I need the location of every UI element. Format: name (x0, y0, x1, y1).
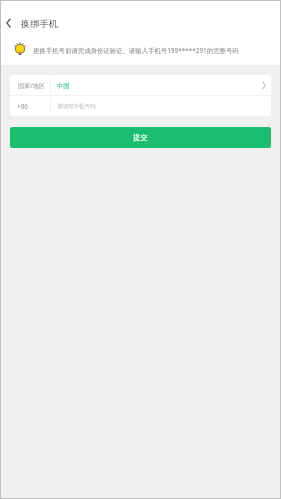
button[interactable]: 提交 (10, 127, 271, 148)
staticText: 换绑手机 (21, 18, 58, 30)
staticText: 更换手机号前请完成身份证验证。请输入手机号199*****291的完整号码 (33, 46, 239, 55)
button[interactable]: Back (1, 15, 16, 30)
staticText: 请填写手机号码 (57, 103, 96, 110)
staticText: 中国 (57, 82, 70, 90)
button[interactable]: 国家/地区 (10, 75, 271, 95)
staticText: 提交 (133, 133, 148, 142)
button[interactable]: +86 (10, 96, 271, 116)
staticText: +86 (17, 102, 28, 111)
staticText: 国家/地区 (18, 81, 46, 89)
